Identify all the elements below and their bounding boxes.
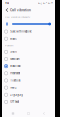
staticText: â—¦ â–² â–® xyxy=(38,2,53,4)
staticText: Heartbeat xyxy=(10,72,20,75)
staticText: Pattern xyxy=(5,44,13,47)
button[interactable]: Basic call xyxy=(2,63,55,70)
button[interactable]: Short xyxy=(2,48,55,55)
staticText: Waltz xyxy=(10,86,16,89)
staticText: Short xyxy=(10,50,17,53)
button[interactable]: Recents xyxy=(8,110,17,117)
button[interactable]: Waltz xyxy=(2,84,55,91)
staticText: Off beat xyxy=(10,100,19,103)
staticText: Sync with ringtone xyxy=(10,30,31,33)
button[interactable]: Home xyxy=(24,110,33,117)
staticText: Medium xyxy=(10,57,19,61)
button[interactable]: Back xyxy=(4,6,10,14)
button[interactable]: Off beat xyxy=(2,98,55,106)
button[interactable]: Zig-zig-zig xyxy=(2,91,55,98)
staticText: Call vibration xyxy=(10,8,31,12)
staticText: Call vibration intensity xyxy=(5,15,30,18)
staticText: Zig-zig-zig xyxy=(10,93,22,96)
staticText: Ticktock xyxy=(10,79,20,82)
button[interactable]: Ticktock xyxy=(2,77,55,84)
button[interactable]: Medium xyxy=(2,55,55,63)
button[interactable]: Basic xyxy=(2,35,55,42)
button[interactable]: Back xyxy=(39,110,48,117)
staticText: Basic xyxy=(10,37,16,40)
button[interactable]: Sync with ringtone xyxy=(2,28,55,35)
staticText: Basic call xyxy=(10,65,21,68)
staticText: 9:41 xyxy=(5,1,9,4)
button[interactable]: Heartbeat xyxy=(2,70,55,77)
